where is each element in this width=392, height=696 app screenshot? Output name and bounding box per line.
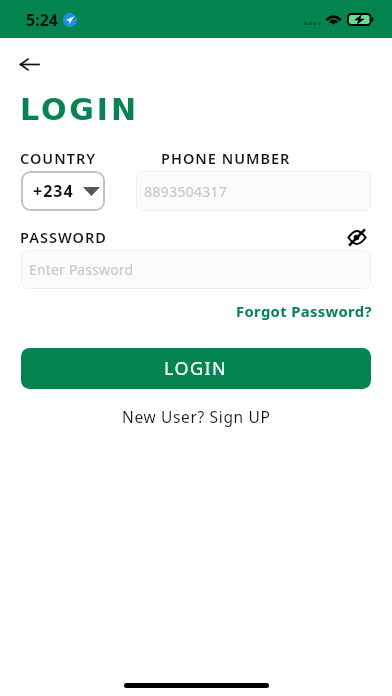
staticText: PHONE NUMBER	[161, 148, 291, 168]
staticText: Forgot Password?	[236, 301, 372, 321]
button[interactable]: Back	[9, 44, 49, 84]
staticText: +234	[33, 180, 74, 202]
staticText: PASSWORD	[20, 227, 107, 247]
staticText: LOGIN	[20, 92, 139, 127]
staticText: 5:24	[26, 9, 58, 31]
button[interactable]: Enter Password	[21, 250, 371, 289]
button[interactable]: LOGIN	[21, 348, 371, 389]
staticText: COUNTRY	[20, 148, 97, 168]
staticText: New User? Sign UP	[122, 406, 271, 427]
button[interactable]: Forgot Password?	[201, 300, 372, 322]
staticText: Enter Password	[29, 260, 134, 279]
staticText: 8893504317	[144, 181, 227, 201]
button[interactable]: +234	[21, 171, 105, 211]
button[interactable]: New User? Sign UP	[122, 406, 271, 427]
staticText: LOGIN	[164, 356, 228, 381]
button[interactable]: 8893504317	[136, 171, 371, 211]
button[interactable]: Show password	[337, 217, 377, 257]
